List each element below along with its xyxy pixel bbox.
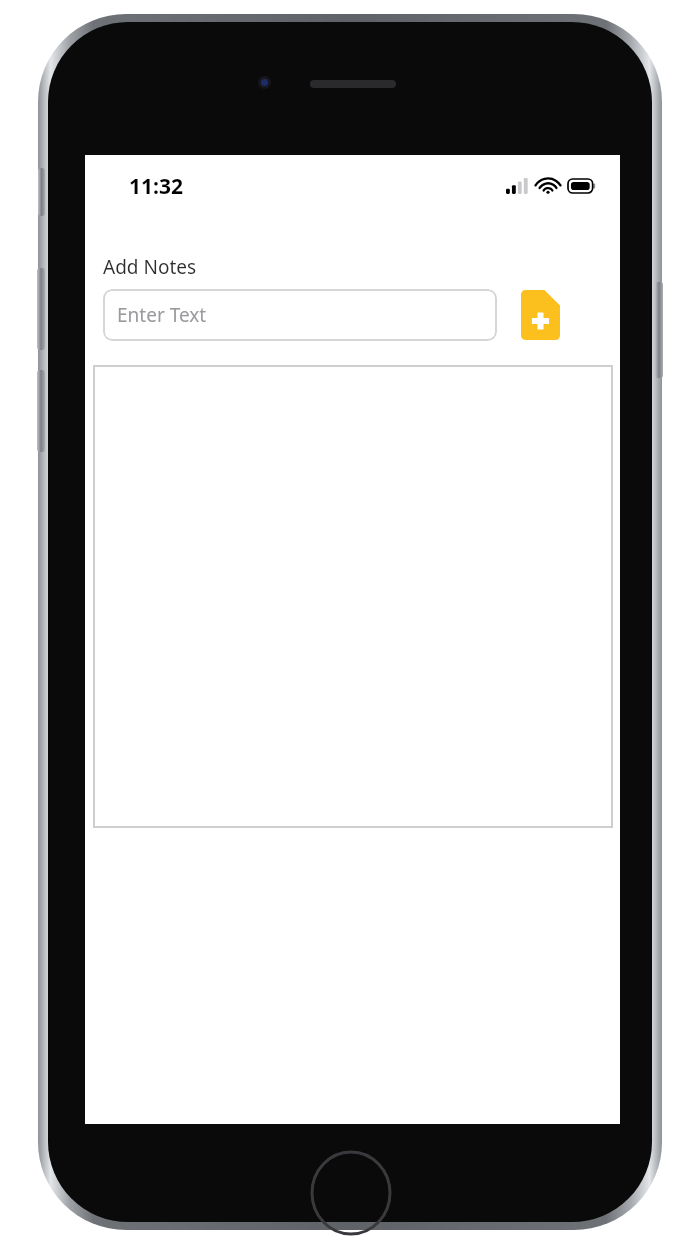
button[interactable] [93, 365, 613, 828]
staticText: 11:32 [129, 172, 183, 201]
button[interactable]: Enter Text [103, 289, 497, 341]
button[interactable]: Add note [517, 287, 563, 343]
staticText: Add Notes [103, 254, 197, 280]
staticText: Enter Text [117, 302, 207, 328]
